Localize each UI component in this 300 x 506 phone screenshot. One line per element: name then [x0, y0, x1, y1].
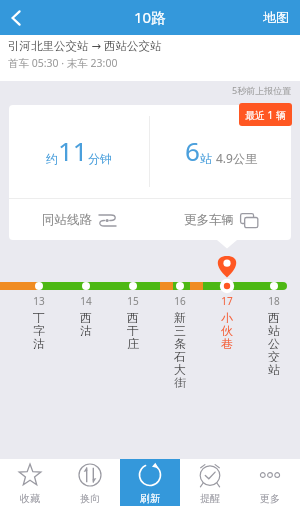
- button[interactable]: Back: [0, 0, 38, 35]
- button[interactable]: 换向: [60, 459, 120, 506]
- button[interactable]: 14: [70, 294, 102, 336]
- staticText: 更多车辆: [184, 212, 234, 228]
- button[interactable]: 更多: [240, 459, 300, 506]
- staticText: 6: [185, 133, 200, 168]
- staticText: 站: [268, 323, 280, 336]
- staticText: 地图: [263, 9, 289, 25]
- staticText: 站: [268, 362, 280, 375]
- staticText: 石: [174, 349, 186, 362]
- staticText: 西: [268, 310, 280, 323]
- staticText: 丁: [33, 310, 45, 323]
- staticText: 西: [127, 310, 139, 323]
- staticText: 街: [174, 375, 186, 388]
- staticText: 17: [221, 294, 233, 308]
- staticText: 大: [174, 362, 186, 375]
- button[interactable]: 最近 1 辆: [239, 103, 292, 126]
- staticText: 巷: [221, 336, 233, 349]
- staticText: 14: [80, 294, 92, 308]
- staticText: 首车 05:30 · 末车 23:00: [8, 56, 118, 70]
- staticText: 交: [268, 349, 280, 362]
- staticText: 16: [174, 294, 186, 308]
- staticText: 同站线路: [42, 212, 92, 228]
- button[interactable]: 地图: [252, 0, 300, 35]
- staticText: 更多: [260, 492, 280, 505]
- button[interactable]: 提醒: [180, 459, 240, 506]
- staticText: 新: [174, 310, 186, 323]
- staticText: 约: [46, 151, 58, 166]
- staticText: 站: [200, 151, 212, 166]
- staticText: 5秒前上报位置: [232, 84, 292, 96]
- staticText: 18: [268, 294, 280, 308]
- staticText: 10路: [134, 7, 167, 27]
- button[interactable]: 15: [117, 294, 149, 349]
- staticText: 公: [268, 336, 280, 349]
- staticText: 字: [33, 323, 45, 336]
- button[interactable]: 更多车辆: [150, 199, 291, 240]
- staticText: 分钟: [88, 151, 112, 166]
- button[interactable]: 收藏: [0, 459, 60, 506]
- button[interactable]: 16: [164, 294, 196, 388]
- button[interactable]: 18: [258, 294, 290, 375]
- staticText: 小: [221, 310, 233, 323]
- staticText: 沽: [80, 323, 92, 336]
- staticText: 刷新: [140, 492, 160, 505]
- staticText: 15: [127, 294, 139, 308]
- staticText: 收藏: [20, 492, 40, 505]
- staticText: 引河北里公交站 → 西站公交站: [8, 38, 162, 54]
- staticText: 换向: [80, 492, 100, 505]
- button[interactable]: 刷新: [120, 459, 180, 506]
- button[interactable]: 6: [150, 105, 291, 198]
- staticText: 伙: [221, 323, 233, 336]
- staticText: 13: [33, 294, 45, 308]
- staticText: 于: [127, 323, 139, 336]
- button[interactable]: 同站线路: [9, 199, 150, 240]
- staticText: 条: [174, 336, 186, 349]
- button[interactable]: 17: [211, 294, 243, 349]
- button[interactable]: 13: [23, 294, 55, 349]
- button[interactable]: 约: [9, 105, 149, 198]
- staticText: 庄: [127, 336, 139, 349]
- staticText: 11: [58, 133, 88, 168]
- staticText: 提醒: [200, 492, 220, 505]
- staticText: 西: [80, 310, 92, 323]
- staticText: 沽: [33, 336, 45, 349]
- staticText: 三: [174, 323, 186, 336]
- staticText: 4.9公里: [216, 150, 257, 166]
- staticText: 最近 1 辆: [245, 108, 286, 122]
